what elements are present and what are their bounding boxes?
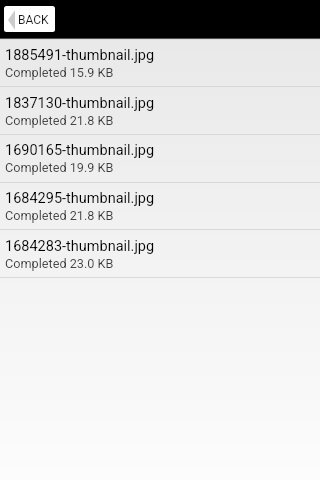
staticText: BACK [18, 13, 49, 27]
staticText: 1684283-thumbnail.jpg [5, 238, 155, 255]
staticText: 1837130-thumbnail.jpg [5, 95, 155, 112]
button[interactable]: 1837130-thumbnail.jpg [0, 87, 320, 134]
staticText: Completed 23.0 KB [5, 256, 114, 271]
button[interactable]: 1684283-thumbnail.jpg [0, 230, 320, 277]
staticText: Completed 15.9 KB [5, 65, 114, 80]
staticText: Completed 21.8 KB [5, 208, 114, 223]
staticText: 1690165-thumbnail.jpg [5, 142, 155, 159]
button[interactable]: 1684295-thumbnail.jpg [0, 183, 320, 229]
button[interactable]: 1690165-thumbnail.jpg [0, 135, 320, 182]
staticText: 1684295-thumbnail.jpg [5, 190, 155, 207]
staticText: Completed 19.9 KB [5, 160, 114, 175]
button[interactable]: 1885491-thumbnail.jpg [0, 38, 320, 86]
staticText: 1885491-thumbnail.jpg [5, 47, 155, 64]
staticText: Completed 21.8 KB [5, 113, 114, 128]
button[interactable]: Back [4, 6, 55, 32]
